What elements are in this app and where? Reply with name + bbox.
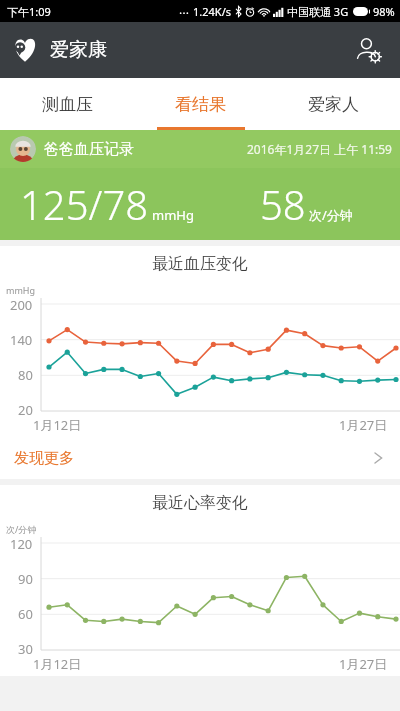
staticText: 1月27日: [339, 416, 388, 434]
staticText: 看结果: [175, 94, 226, 115]
staticText: 最近心率变化: [152, 493, 248, 513]
button[interactable]: Account settings: [346, 28, 390, 72]
staticText: 58: [260, 177, 306, 231]
staticText: 1月12日: [33, 655, 82, 673]
button[interactable]: 发现更多: [0, 437, 400, 479]
staticText: 60: [18, 605, 33, 623]
staticText: 爱家人: [308, 94, 359, 115]
staticText: 爱家康: [50, 38, 107, 62]
staticText: 30: [18, 640, 33, 658]
staticText: 120: [10, 535, 33, 553]
button[interactable]: 爱家人: [267, 78, 400, 130]
staticText: 125/78: [20, 177, 149, 231]
staticText: 200: [10, 296, 33, 314]
staticText: 90: [18, 570, 33, 588]
staticText: 测血压: [42, 94, 93, 115]
staticText: 次/分钟: [309, 206, 353, 224]
staticText: 下午1:09: [7, 4, 51, 19]
staticText: 20: [18, 401, 33, 419]
staticText: mmHg: [6, 284, 36, 296]
staticText: 最近血压变化: [152, 254, 248, 274]
button[interactable]: 看结果: [134, 78, 267, 130]
staticText: 140: [10, 331, 33, 349]
staticText: 次/分钟: [6, 523, 37, 535]
staticText: 发现更多: [14, 449, 74, 468]
staticText: 爸爸血压记录: [44, 140, 134, 159]
staticText: 1月27日: [339, 655, 388, 673]
staticText: 98%: [373, 4, 395, 19]
staticText: 2016年1月27日 上午 11:59: [247, 141, 392, 157]
staticText: 1月12日: [33, 416, 82, 434]
staticText: mmHg: [152, 206, 194, 224]
staticText: 中国联通 3G: [287, 4, 349, 19]
staticText: 1.24K/s: [193, 4, 231, 19]
button[interactable]: 测血压: [0, 78, 134, 130]
staticText: 80: [18, 366, 33, 384]
